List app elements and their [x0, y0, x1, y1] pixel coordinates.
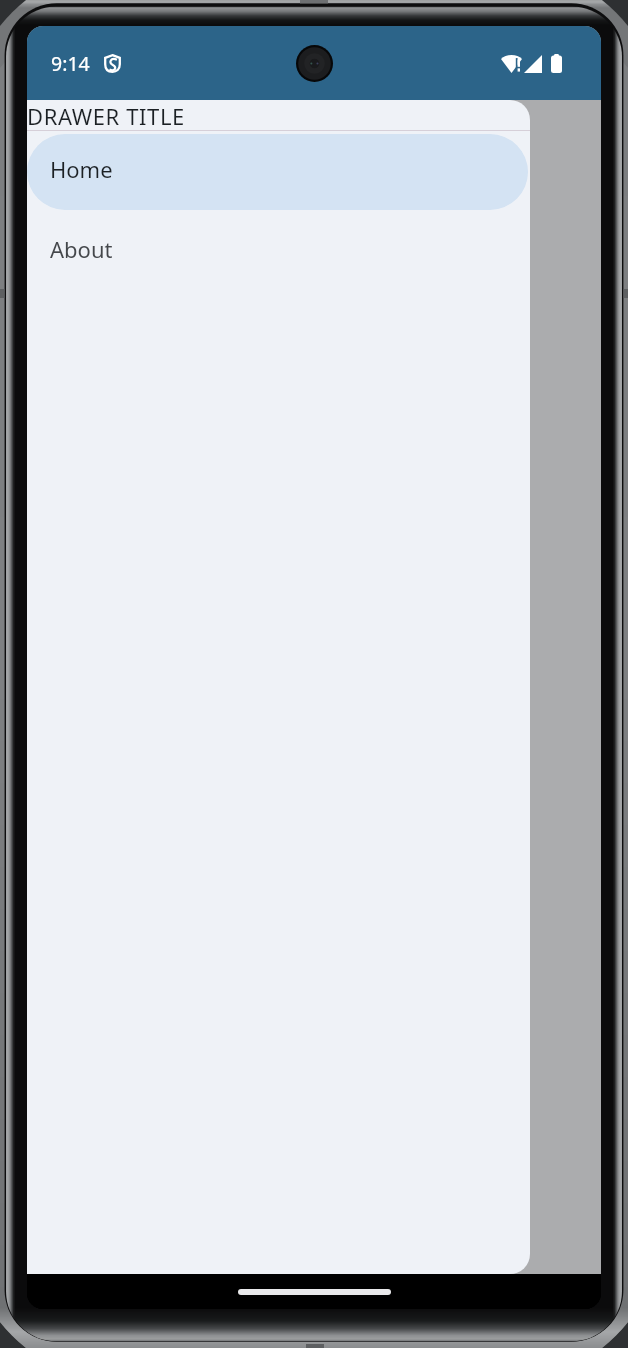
staticText: DRAWER TITLE: [27, 101, 185, 131]
staticText: About: [50, 234, 113, 264]
button[interactable]: Close navigation drawer: [27, 100, 601, 1274]
button[interactable]: About: [27, 212, 530, 292]
staticText: Home: [50, 154, 113, 184]
staticText: 9:14: [51, 50, 90, 77]
button[interactable]: Home: [27, 132, 530, 212]
